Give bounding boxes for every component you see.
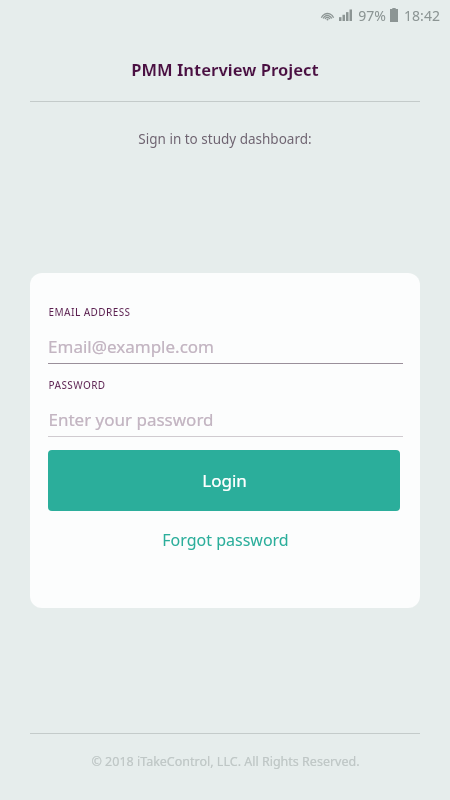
staticText: Forgot password (162, 529, 289, 551)
button[interactable]: Email@example.com (48, 330, 403, 363)
staticText: Enter your password (48, 408, 214, 431)
button[interactable]: Login (48, 450, 400, 511)
staticText: 18:42 (404, 6, 440, 25)
staticText: 97% (358, 6, 386, 25)
staticText: PMM Interview Project (131, 58, 319, 80)
button[interactable]: Enter your password (48, 403, 403, 436)
staticText: Email@example.com (48, 335, 214, 358)
staticText: Login (202, 469, 247, 492)
staticText: EMAIL ADDRESS (48, 305, 131, 319)
staticText: Sign in to study dashboard: (138, 130, 312, 148)
staticText: PASSWORD (48, 378, 106, 392)
button[interactable]: Forgot password (30, 524, 420, 556)
staticText: © 2018 iTakeControl, LLC. All Rights Res… (91, 753, 360, 770)
